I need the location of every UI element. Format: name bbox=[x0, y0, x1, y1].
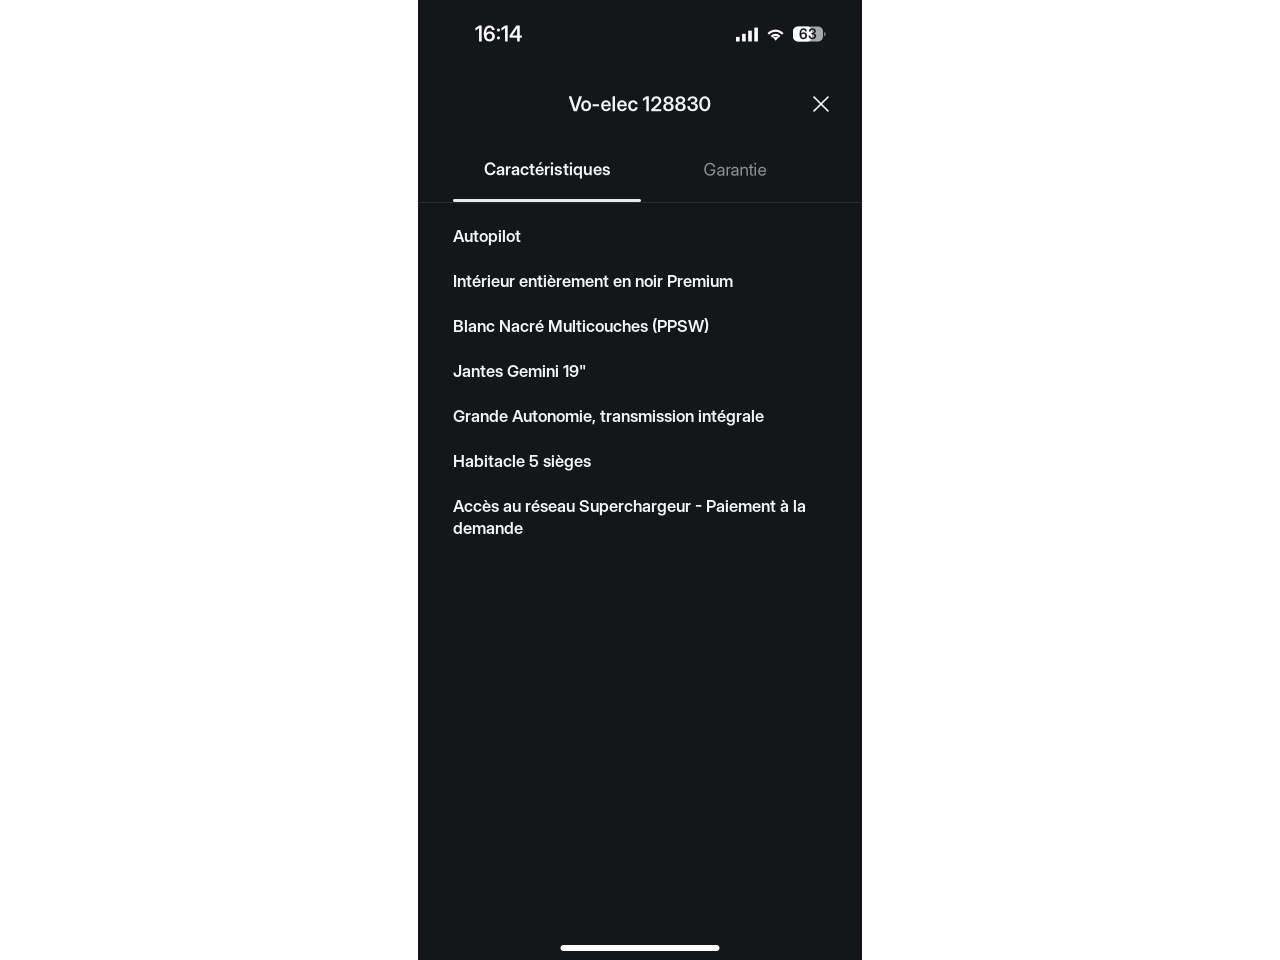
staticText: Intérieur entièrement en noir Premium bbox=[453, 271, 733, 291]
button[interactable]: Close bbox=[799, 80, 843, 124]
staticText: Blanc Nacré Multicouches (PPSW) bbox=[453, 316, 709, 336]
button[interactable]: Garantie bbox=[641, 146, 829, 202]
staticText: Garantie bbox=[703, 159, 766, 180]
staticText: 63 bbox=[799, 25, 817, 42]
staticText: Vo-elec 128830 bbox=[568, 92, 711, 116]
staticText: Grande Autonomie, transmission intégrale bbox=[453, 406, 764, 426]
staticText: Caractéristiques bbox=[484, 159, 610, 179]
staticText: Jantes Gemini 19" bbox=[453, 361, 586, 381]
staticText: Autopilot bbox=[453, 226, 521, 246]
button[interactable]: Caractéristiques bbox=[453, 146, 641, 202]
staticText: Habitacle 5 sièges bbox=[453, 451, 591, 471]
staticText: Accès au réseau Superchargeur - Paiement… bbox=[453, 496, 806, 538]
staticText: 16:14 bbox=[475, 21, 522, 47]
